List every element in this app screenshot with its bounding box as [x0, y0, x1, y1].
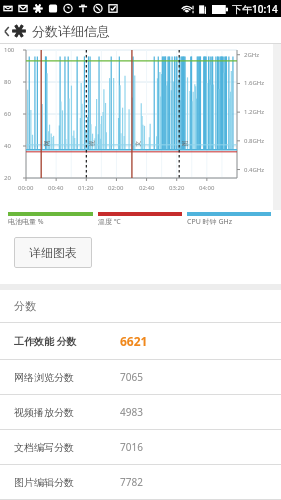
staticText: 2GHz — [244, 51, 260, 59]
staticText: 文档编写 — [133, 137, 141, 146]
staticText: 00:40 — [48, 184, 64, 192]
staticText: 7782 — [120, 475, 143, 489]
staticText: 1.2GHz — [244, 108, 265, 116]
staticText: 分数 — [14, 299, 36, 313]
staticText: 03:20 — [169, 184, 185, 192]
staticText: 4983 — [120, 405, 143, 419]
staticText: 视频播放分数 — [14, 406, 74, 419]
staticText: 7016 — [120, 440, 143, 454]
staticText: 7065 — [120, 370, 143, 384]
button[interactable]: 详细图表 — [14, 237, 92, 268]
staticText: 40 — [4, 142, 11, 150]
staticText: 网络浏览 — [42, 137, 50, 146]
staticText: 图片编辑 — [180, 137, 188, 146]
staticText: 01:20 — [78, 184, 94, 192]
staticText: 分数详细信息 — [32, 23, 110, 39]
staticText: 视频播放 — [87, 137, 95, 146]
button[interactable]: Back — [0, 23, 31, 39]
button[interactable]: 图片编辑分数 — [0, 465, 281, 499]
staticText: 60 — [4, 110, 11, 118]
staticText: 网络浏览分数 — [14, 371, 74, 384]
staticText: 100 — [4, 46, 15, 54]
staticText: 下午10:14 — [232, 2, 278, 16]
button[interactable]: 文档编写分数 — [0, 430, 281, 464]
staticText: 0.8GHz — [244, 137, 265, 145]
button[interactable]: 视频播放分数 — [0, 395, 281, 429]
staticText: 图片编辑分数 — [14, 476, 74, 489]
staticText: 温度 ℃ — [98, 217, 121, 227]
staticText: 6621 — [120, 333, 148, 349]
staticText: 80 — [4, 78, 11, 86]
staticText: 详细图表 — [29, 245, 77, 260]
staticText: 20 — [4, 174, 11, 182]
staticText: 1.6GHz — [244, 79, 265, 87]
staticText: 00:00 — [18, 184, 34, 192]
staticText: 04:00 — [199, 184, 215, 192]
button[interactable]: 网络浏览分数 — [0, 360, 281, 394]
staticText: 02:40 — [139, 184, 155, 192]
staticText: 0.4GHz — [244, 166, 265, 174]
staticText: 文档编写分数 — [14, 441, 74, 454]
staticText: 02:00 — [108, 184, 124, 192]
staticText: 工作效能 分数 — [14, 334, 77, 348]
staticText: 电池电量 % — [8, 217, 44, 227]
button[interactable]: 工作效能 分数 — [0, 323, 281, 359]
staticText: CPU 时钟 GHz — [187, 217, 232, 227]
